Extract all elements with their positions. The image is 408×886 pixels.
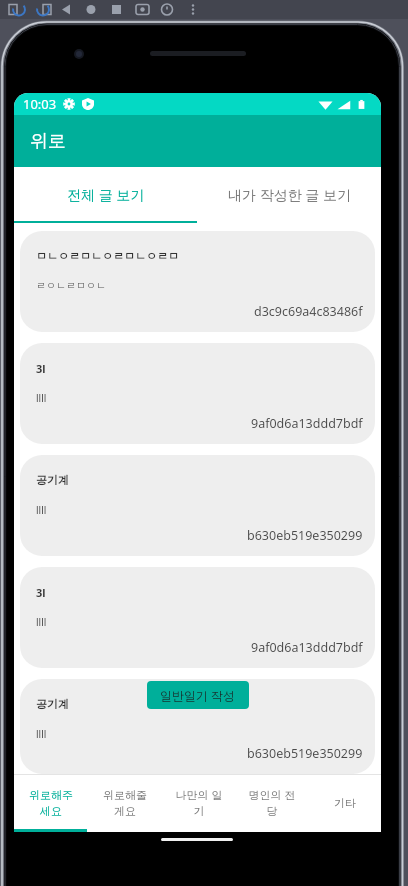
button[interactable]: 전체 글 보기 bbox=[14, 167, 197, 221]
staticText: 위로 bbox=[30, 130, 66, 153]
staticText: 공기계 bbox=[36, 473, 69, 487]
button[interactable]: 명인의 전당 bbox=[235, 775, 308, 829]
button[interactable]: 내가 작성한 글 보기 bbox=[197, 167, 381, 221]
staticText: 일반일기 작성 bbox=[160, 687, 236, 703]
staticText: 3l bbox=[36, 361, 46, 376]
button[interactable]: 3l bbox=[20, 567, 375, 668]
staticText: 공기계 bbox=[36, 697, 69, 711]
button[interactable]: 공기계 bbox=[20, 455, 375, 556]
staticText: 9af0d6a13ddd7bdf bbox=[251, 415, 363, 432]
button[interactable]: 기타 bbox=[308, 775, 381, 829]
staticText: 위로해주세요 bbox=[27, 788, 75, 819]
staticText: 나만의 일기 bbox=[175, 787, 223, 819]
button[interactable]: 일반일기 작성 bbox=[147, 681, 249, 709]
staticText: b630eb519e350299 bbox=[247, 527, 363, 544]
button[interactable]: 3l bbox=[20, 343, 375, 444]
staticText: 명인의 전당 bbox=[248, 787, 296, 819]
button[interactable]: 공기계 bbox=[20, 679, 375, 774]
staticText: 10:03 bbox=[23, 95, 57, 113]
button[interactable]: ㅁㄴㅇㄹㅁㄴㅇㄹㅁㄴㅇㄹㅁ bbox=[20, 231, 375, 332]
staticText: b630eb519e350299 bbox=[247, 745, 363, 762]
staticText: llll bbox=[36, 727, 47, 741]
staticText: 내가 작성한 글 보기 bbox=[228, 185, 351, 204]
staticText: 기타 bbox=[334, 796, 356, 810]
staticText: llll bbox=[36, 391, 47, 405]
staticText: ㅁㄴㅇㄹㅁㄴㅇㄹㅁㄴㅇㄹㅁ bbox=[36, 249, 179, 263]
button[interactable]: 위로해주세요 bbox=[14, 775, 88, 829]
staticText: ㄹㅇㄴㄹㅁㅇㄴ bbox=[36, 279, 106, 292]
other: Settings bbox=[63, 98, 75, 110]
staticText: 위로해줄게요 bbox=[101, 788, 149, 819]
staticText: llll bbox=[36, 615, 47, 629]
staticText: d3c9c69a4c83486f bbox=[254, 303, 363, 320]
staticText: 3l bbox=[36, 585, 46, 600]
staticText: llll bbox=[36, 503, 47, 517]
button[interactable]: 위로해줄게요 bbox=[88, 775, 162, 829]
staticText: 전체 글 보기 bbox=[67, 185, 145, 204]
button[interactable]: 나만의 일기 bbox=[162, 775, 235, 829]
staticText: 9af0d6a13ddd7bdf bbox=[251, 639, 363, 656]
